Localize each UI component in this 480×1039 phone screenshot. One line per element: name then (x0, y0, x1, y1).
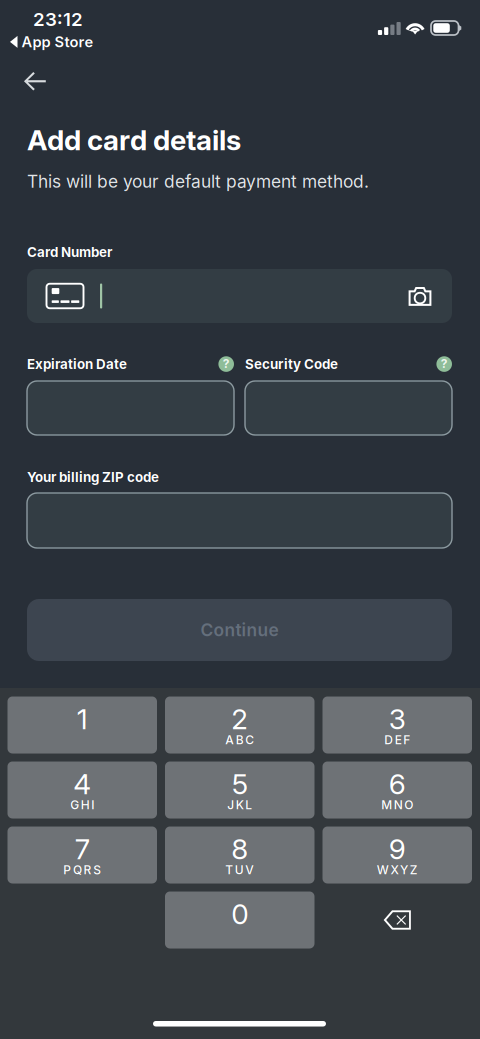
button[interactable]: 5 (165, 761, 314, 818)
button[interactable]: 1 (7, 696, 157, 753)
button[interactable]: Continue (27, 599, 452, 661)
staticText: MNO (381, 798, 413, 812)
staticText: Add card details (27, 123, 241, 157)
button[interactable]: 4 (7, 761, 157, 818)
button[interactable]: Help (436, 356, 452, 372)
staticText: Security Code (245, 356, 338, 372)
staticText: Expiration Date (27, 356, 127, 372)
staticText: 4 (73, 767, 91, 801)
staticText: PQRS (63, 863, 101, 877)
button[interactable]: Expiration date (27, 381, 234, 435)
staticText: Card Number (27, 244, 112, 260)
button[interactable]: 7 (7, 826, 157, 883)
button[interactable]: 6 (322, 761, 472, 818)
staticText: TUV (225, 863, 254, 877)
staticText: 5 (232, 767, 248, 801)
staticText: 2 (231, 702, 248, 736)
staticText: App Store (21, 33, 93, 51)
staticText: 8 (231, 832, 248, 866)
staticText: This will be your default payment method… (27, 171, 369, 192)
button[interactable]: Security code (245, 381, 452, 435)
staticText: GHI (70, 798, 94, 812)
button[interactable]: Billing ZIP code (27, 493, 452, 548)
button[interactable]: Help (218, 356, 234, 372)
button[interactable]: 9 (322, 826, 472, 883)
staticText: ABC (225, 733, 254, 747)
button[interactable]: Back (14, 62, 56, 100)
staticText: ? (441, 356, 448, 371)
staticText: 0 (231, 897, 248, 931)
staticText: 1 (77, 702, 88, 736)
button[interactable]: 0 (165, 891, 314, 948)
staticText: Your billing ZIP code (27, 469, 159, 485)
button[interactable]: Card number (27, 269, 452, 323)
staticText: 9 (389, 832, 406, 866)
button[interactable]: Delete (322, 891, 472, 948)
staticText: Continue (200, 619, 278, 640)
staticText: WXYZ (377, 863, 418, 877)
staticText: DEF (384, 733, 410, 747)
button[interactable]: 2 (165, 696, 314, 753)
staticText: 3 (389, 702, 406, 736)
button[interactable]: 8 (165, 826, 314, 883)
button[interactable]: 3 (322, 696, 472, 753)
staticText: 7 (75, 832, 90, 866)
staticText: 23:12 (33, 8, 83, 31)
staticText: 6 (389, 767, 406, 801)
staticText: JKL (227, 798, 252, 812)
staticText: ? (223, 356, 230, 371)
